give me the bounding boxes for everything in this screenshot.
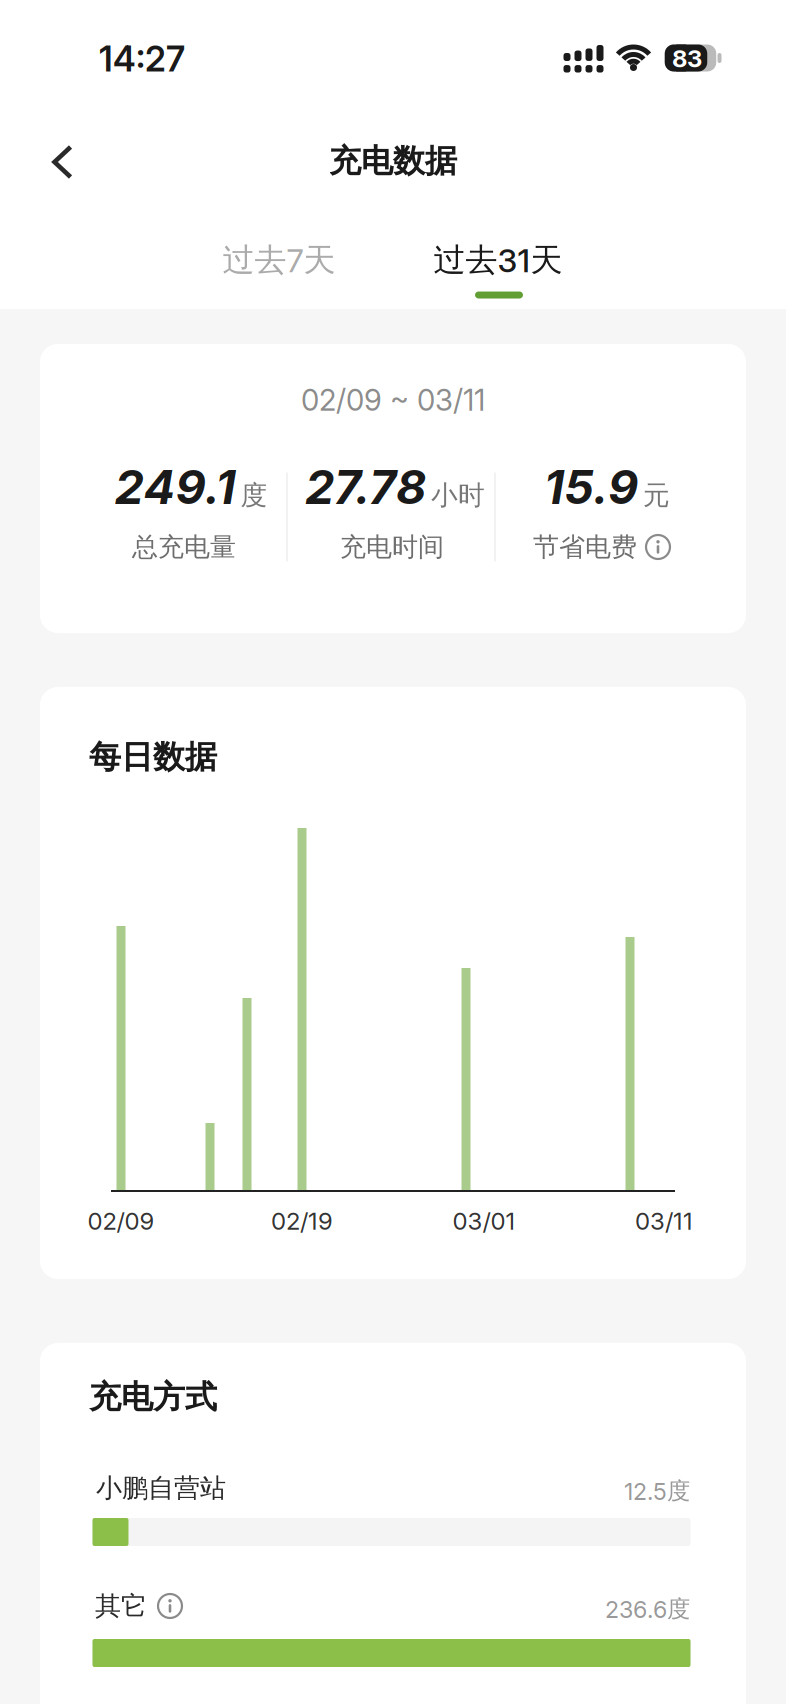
staticText: 02/09 ~ 03/11	[301, 382, 485, 418]
staticText: 每日数据	[89, 737, 217, 777]
staticText: 充电方式	[89, 1377, 217, 1417]
staticText: 83	[672, 44, 702, 73]
staticText: 过去31天	[433, 240, 562, 280]
staticText: 充电时间	[340, 531, 444, 563]
button[interactable]: 过去7天	[212, 230, 345, 290]
button[interactable]: Info	[645, 534, 671, 560]
staticText: 03/11	[635, 1206, 693, 1235]
staticText: 27.78	[305, 459, 426, 515]
staticText: 236.6度	[605, 1594, 690, 1624]
button[interactable]: Back	[39, 133, 85, 191]
staticText: 小时	[431, 479, 485, 512]
staticText: 15.9	[544, 459, 638, 515]
staticText: 元	[643, 479, 670, 512]
staticText: 14:27	[99, 38, 185, 80]
staticText: 12.5度	[624, 1476, 690, 1506]
staticText: 02/09	[87, 1206, 154, 1235]
staticText: 02/19	[271, 1206, 333, 1235]
staticText: 其它	[95, 1590, 147, 1622]
button[interactable]: Info	[157, 1593, 183, 1619]
staticText: 充电数据	[329, 141, 457, 181]
staticText: 03/01	[452, 1206, 515, 1235]
staticText: 249.1	[114, 459, 235, 515]
button[interactable]: 过去31天	[423, 230, 572, 290]
staticText: 度	[240, 479, 267, 512]
staticText: 小鹏自营站	[96, 1472, 226, 1504]
staticText: 过去7天	[222, 240, 335, 280]
staticText: 节省电费	[533, 531, 637, 563]
staticText: 总充电量	[132, 531, 236, 563]
